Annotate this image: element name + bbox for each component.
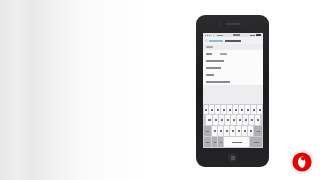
button[interactable]: Backspace (254, 126, 262, 136)
button[interactable]: Key (236, 126, 241, 136)
button[interactable]: Key (221, 105, 226, 114)
button[interactable]: Key (213, 115, 218, 125)
button[interactable]: Key (230, 126, 235, 136)
button[interactable]: Vodafone logo (290, 150, 314, 174)
button[interactable] (203, 64, 263, 71)
button[interactable]: Key (204, 105, 208, 114)
button[interactable]: Key (243, 115, 248, 125)
button[interactable]: Key (209, 105, 214, 114)
button[interactable]: Key (242, 126, 247, 136)
button[interactable]: Key (248, 126, 253, 136)
button[interactable]: Emoji (212, 137, 217, 147)
button[interactable]: Key (239, 105, 244, 114)
button[interactable] (203, 57, 263, 64)
button[interactable]: Key (215, 105, 220, 114)
button[interactable]: Back (205, 39, 223, 42)
button[interactable]: Key (218, 126, 223, 136)
button[interactable]: Key (251, 105, 256, 114)
button[interactable]: Dictate (218, 137, 223, 147)
button[interactable]: Key (231, 115, 236, 125)
button[interactable]: Key (237, 115, 242, 125)
button[interactable]: Key (255, 115, 260, 125)
button[interactable] (203, 71, 263, 78)
button[interactable]: Key (219, 115, 224, 125)
button[interactable]: Key (249, 115, 254, 125)
button[interactable]: Key (227, 105, 232, 114)
button[interactable] (203, 78, 263, 85)
button[interactable]: Numbers (204, 137, 211, 147)
button[interactable]: Return (250, 137, 262, 147)
button[interactable]: Space (224, 137, 249, 147)
button[interactable]: Key (245, 105, 250, 114)
button[interactable]: Key (233, 105, 238, 114)
button[interactable]: Home button (228, 153, 237, 162)
button[interactable]: Key (212, 126, 217, 136)
button[interactable]: Key (224, 126, 229, 136)
button[interactable]: Shift (204, 126, 211, 136)
button[interactable]: Key (225, 115, 230, 125)
button[interactable] (203, 50, 263, 57)
button[interactable]: Key (257, 105, 262, 114)
button[interactable]: Key (206, 115, 212, 125)
